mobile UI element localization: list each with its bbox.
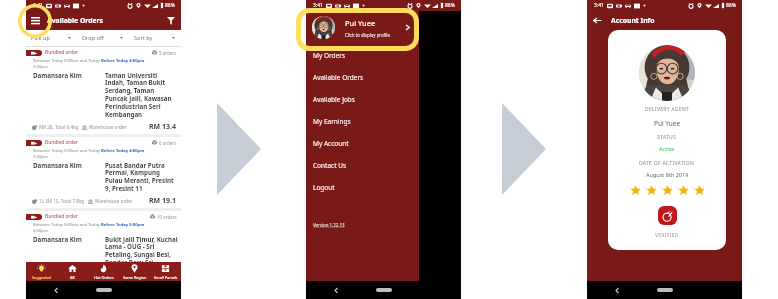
button[interactable]: Bundled order: [26, 211, 181, 262]
button[interactable]: Suggested: [26, 262, 57, 281]
staticText: 6 orders: [159, 140, 177, 146]
staticText: 86%: [445, 2, 455, 9]
staticText: DATE OF ACTIVATION: [639, 160, 695, 167]
staticText: RM 13.4: [149, 122, 176, 132]
staticText: Sort by: [134, 34, 153, 42]
staticText: STATUS: [657, 134, 677, 141]
staticText: My Earnings: [313, 117, 351, 126]
staticText: DELIVERY AGENT: [645, 106, 690, 113]
staticText: August 8th 2019: [646, 171, 689, 178]
button[interactable]: Logout: [306, 176, 419, 198]
button[interactable]: All: [57, 262, 88, 281]
button[interactable]: Navigate back: [587, 11, 606, 30]
staticText: Damansara Kim: [33, 235, 105, 243]
staticText: Small Parcels: [154, 275, 178, 280]
staticText: Warehouse order: [89, 124, 127, 130]
button[interactable]: Hot Orders: [88, 262, 119, 281]
button[interactable]: Open navigation menu: [26, 11, 45, 30]
staticText: All: [70, 275, 75, 280]
staticText: 3:41: [594, 2, 604, 9]
staticText: Drop off: [82, 34, 104, 42]
button[interactable]: Sort by: [129, 30, 181, 46]
button[interactable]: Pui Yuee: [306, 11, 419, 44]
button[interactable]: Same Region: [119, 262, 150, 281]
staticText: Active: [659, 145, 675, 152]
staticText: Between Today 9:00am and Today Before To…: [33, 58, 160, 69]
staticText: Bundled order: [45, 213, 79, 220]
staticText: 3:41: [313, 2, 323, 9]
staticText: 10 orders: [157, 214, 177, 220]
staticText: 1L 3M 1S, Total 7.8kg: [39, 198, 85, 204]
staticText: Available Jobs: [313, 95, 355, 104]
staticText: Same Region: [123, 275, 147, 280]
staticText: Logout: [313, 183, 335, 192]
staticText: Pui Yuee: [654, 119, 681, 128]
button[interactable]: Filter orders: [161, 11, 180, 30]
staticText: Contact Us: [313, 161, 347, 170]
staticText: 5 orders: [159, 50, 177, 56]
staticText: Damansara Kim: [33, 161, 105, 169]
staticText: Bukit Jalil Timur, Kuchai Lama - OUG - S…: [105, 235, 178, 262]
staticText: Available Orders: [47, 16, 104, 25]
staticText: My Account: [313, 139, 349, 148]
button[interactable]: Bundled order: [26, 47, 181, 134]
staticText: Bundled order: [45, 139, 79, 146]
staticText: Between Today 9:00am and Today Before To…: [33, 148, 160, 159]
staticText: Click to display profile: [345, 32, 390, 38]
button[interactable]: Bundled order: [26, 137, 181, 208]
button[interactable]: Available Orders: [306, 66, 419, 88]
staticText: Account Info: [611, 16, 655, 25]
staticText: My Orders: [313, 51, 345, 60]
button[interactable]: Version 1.22.13: [313, 222, 345, 228]
staticText: Warehouse order: [95, 198, 133, 204]
staticText: Suggested: [32, 275, 51, 280]
staticText: RM 19.1: [149, 196, 176, 206]
staticText: Pick up: [31, 34, 50, 42]
staticText: Hot Orders: [94, 275, 114, 280]
staticText: 3:41: [33, 2, 43, 9]
staticText: 86%: [165, 2, 175, 9]
button[interactable]: Pick up: [26, 30, 77, 46]
staticText: Pusat Bandar Putra Permai, Kampung Pulau…: [105, 161, 178, 193]
staticText: VERIFIED: [655, 232, 679, 239]
button[interactable]: Contact Us: [306, 154, 419, 176]
button[interactable]: My Orders: [306, 44, 419, 66]
button[interactable]: Drop off: [77, 30, 129, 46]
button[interactable]: Available Jobs: [306, 88, 419, 110]
staticText: Pui Yuee: [345, 18, 376, 28]
staticText: Bundled order: [45, 49, 79, 56]
button[interactable]: My Account: [306, 132, 419, 154]
button[interactable]: Small Parcels: [150, 262, 181, 281]
staticText: Available Orders: [313, 73, 364, 82]
staticText: 86%: [726, 2, 736, 9]
staticText: Damansara Kim: [33, 71, 105, 79]
staticText: Taman Universiti Indah, Taman Bukit Serd…: [105, 71, 178, 119]
staticText: Between Today 9:00am and Today Before To…: [33, 222, 160, 233]
button[interactable]: My Earnings: [306, 110, 419, 132]
staticText: RM 28, Total 6.4kg: [39, 124, 79, 130]
